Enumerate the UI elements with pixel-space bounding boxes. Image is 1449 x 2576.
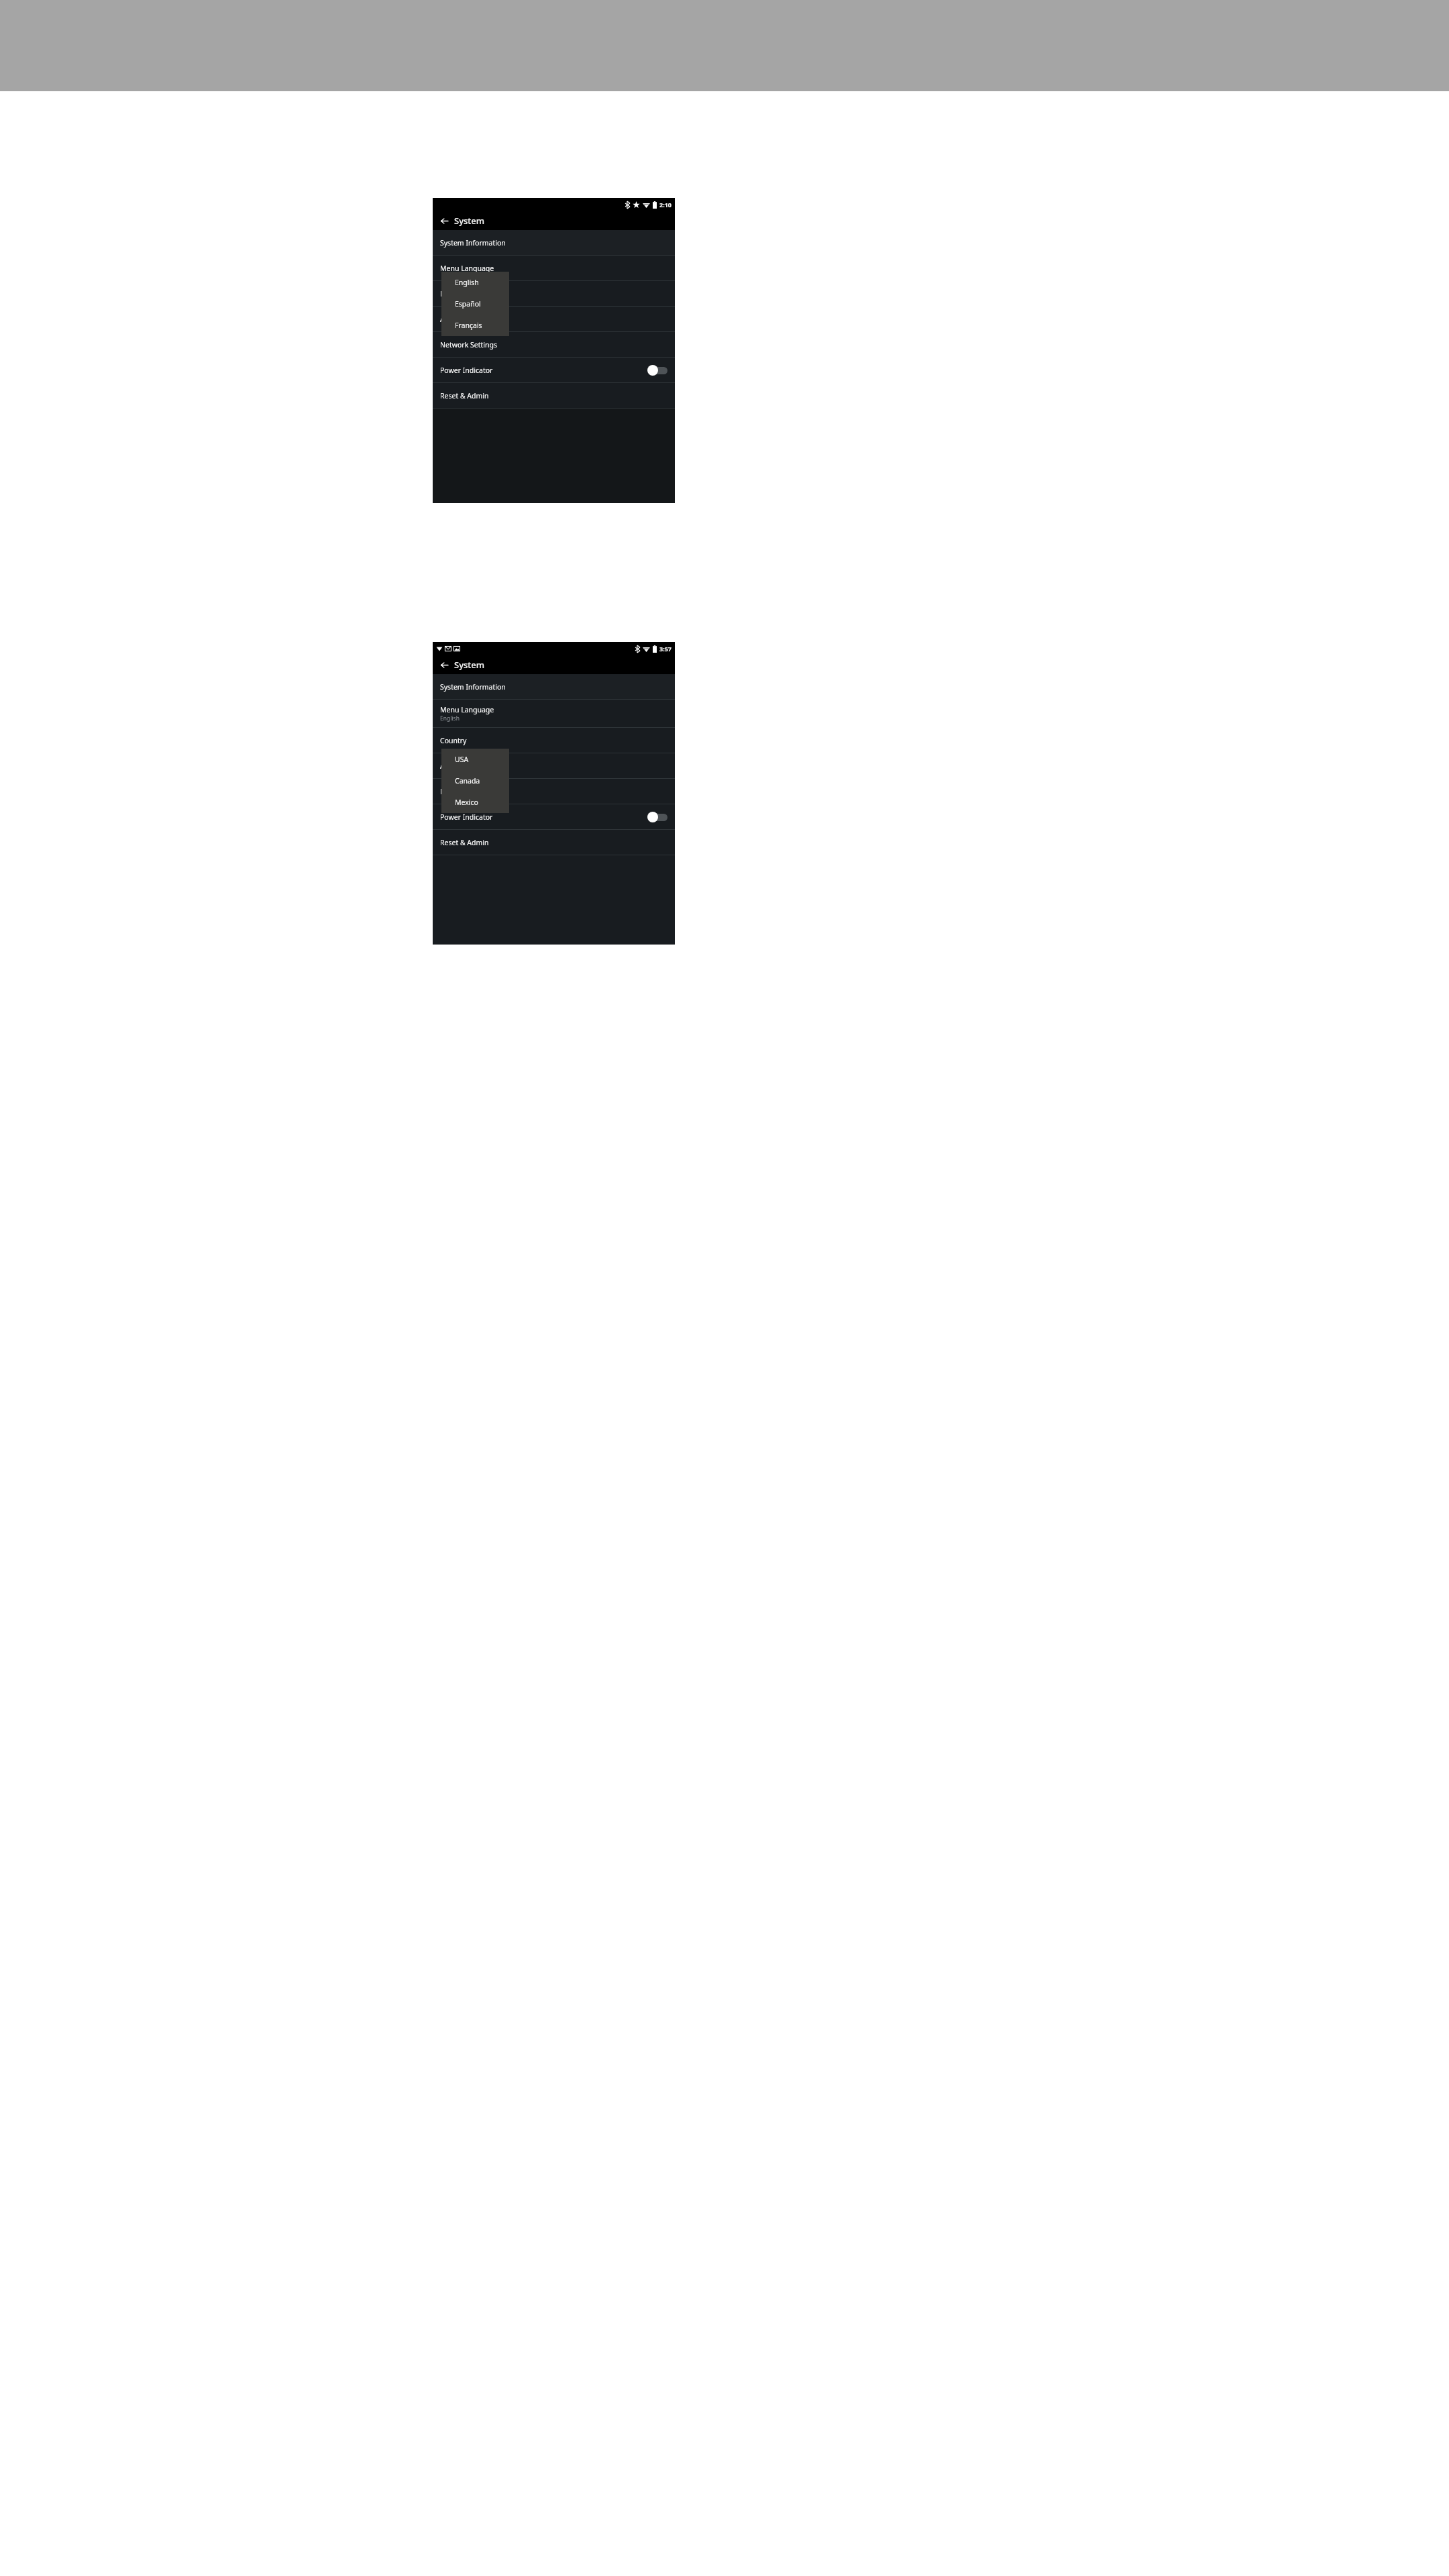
button[interactable]: Power Indicator (433, 358, 675, 382)
button[interactable]: Menu Language (433, 256, 675, 280)
button[interactable]: Audio Settings (433, 307, 675, 331)
button[interactable]: Français (441, 315, 509, 336)
button[interactable]: Display Settings (433, 281, 675, 306)
staticText: System Information (440, 682, 506, 692)
button[interactable]: Back (437, 213, 451, 228)
staticText: USA (455, 755, 469, 764)
staticText: Reset & Admin (440, 838, 489, 847)
staticText: Reset & Admin (440, 391, 489, 400)
staticText: System Information (440, 238, 506, 248)
button[interactable]: Network Settings (433, 332, 675, 357)
button[interactable]: Reset & Admin (433, 383, 675, 408)
staticText: English (455, 278, 479, 287)
button[interactable]: Back (437, 657, 451, 672)
button[interactable]: Power Indicator (433, 804, 675, 829)
button[interactable]: System Information (433, 674, 675, 699)
button[interactable]: Menu Language (433, 700, 675, 727)
button[interactable]: Reset & Admin (433, 830, 675, 855)
staticText: Mexico (455, 798, 478, 807)
staticText: 2:10 (659, 201, 672, 209)
staticText: Audio Settings (440, 315, 488, 324)
button[interactable]: System Information (433, 230, 675, 255)
staticText: System (454, 659, 485, 671)
staticText: Menu Language (440, 705, 494, 714)
staticText: Network Settings (440, 787, 497, 796)
button[interactable]: Español (441, 293, 509, 315)
staticText: Audio Settings (440, 761, 488, 771)
staticText: Country (440, 736, 467, 745)
button[interactable]: English (441, 272, 509, 293)
staticText: Canada (455, 776, 480, 786)
button[interactable]: Network Settings (433, 779, 675, 804)
staticText: Network Settings (440, 340, 497, 350)
button[interactable]: Canada (441, 770, 509, 792)
button[interactable]: Audio Settings (433, 753, 675, 778)
button[interactable]: USA (441, 749, 509, 770)
staticText: Power Indicator (440, 366, 493, 375)
staticText: Español (455, 299, 481, 309)
button[interactable]: Mexico (441, 792, 509, 813)
staticText: Menu Language (440, 264, 494, 273)
staticText: 3:57 (659, 645, 672, 653)
staticText: Display Settings (440, 289, 493, 299)
staticText: System (454, 215, 485, 227)
staticText: Power Indicator (440, 812, 493, 822)
staticText: Français (455, 321, 482, 330)
staticText: English (440, 714, 460, 722)
button[interactable]: Country (433, 728, 675, 753)
